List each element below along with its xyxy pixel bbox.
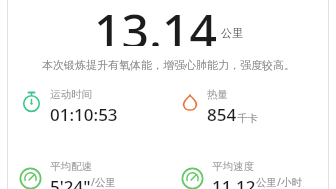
staticText: 运动时间 — [50, 88, 92, 101]
staticText: 本次锻炼提升有氧体能，增强心肺能力，强度较高。 — [42, 58, 295, 72]
staticText: 5'24" — [50, 175, 91, 189]
staticText: /公里 — [91, 175, 116, 188]
staticText: 13.14 — [94, 0, 217, 46]
staticText: 公里/小时 — [256, 175, 302, 188]
staticText: 01:10:53 — [50, 103, 118, 126]
staticText: 千卡 — [237, 112, 258, 125]
staticText: 平均速度 — [212, 160, 254, 173]
staticText: 公里 — [221, 26, 243, 40]
other: Average speed — [181, 168, 204, 189]
staticText: 平均配速 — [50, 160, 92, 173]
button[interactable]: Average speed — [181, 160, 331, 189]
staticText: 11.12 — [212, 175, 256, 189]
staticText: 854 — [207, 103, 237, 126]
button[interactable]: Average pace — [19, 160, 181, 189]
other: Average pace — [19, 168, 42, 189]
other: Exercise time — [21, 91, 42, 112]
button[interactable]: Calories — [181, 88, 328, 126]
other: Calories — [181, 94, 199, 112]
staticText: 热量 — [207, 88, 228, 101]
button[interactable]: Exercise time — [21, 88, 181, 126]
